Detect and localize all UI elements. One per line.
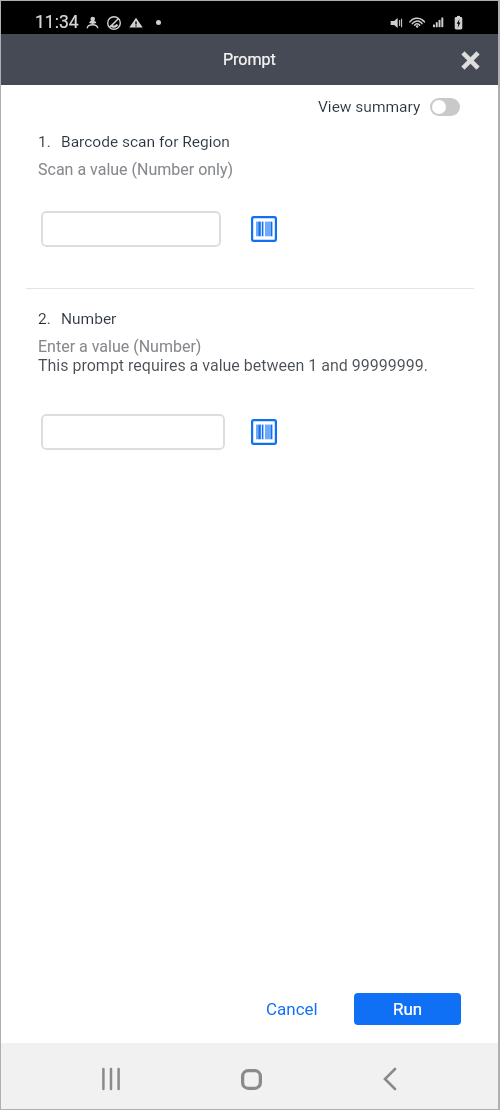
staticText: 2. bbox=[38, 310, 51, 328]
staticText: Barcode scan for Region bbox=[61, 133, 230, 151]
button[interactable]: Cancel bbox=[249, 989, 335, 1029]
button[interactable]: Home bbox=[221, 1049, 281, 1109]
button[interactable]: Scan barcode bbox=[251, 419, 277, 445]
staticText: 1. bbox=[38, 133, 51, 151]
button[interactable]: Run bbox=[354, 993, 461, 1025]
staticText: Prompt bbox=[223, 50, 276, 69]
staticText: Scan a value (Number only) bbox=[38, 160, 234, 179]
button[interactable]: Recent apps bbox=[81, 1049, 141, 1109]
staticText: View summary bbox=[318, 98, 421, 116]
button[interactable]: View summary bbox=[312, 94, 474, 120]
staticText: Enter a value (Number) bbox=[38, 337, 202, 356]
staticText: 11:34 bbox=[35, 12, 79, 33]
button[interactable]: Back bbox=[360, 1049, 420, 1109]
button[interactable]: Close bbox=[450, 40, 490, 80]
staticText: Number bbox=[61, 310, 117, 328]
button[interactable] bbox=[41, 414, 225, 450]
staticText: This prompt requires a value between 1 a… bbox=[38, 356, 428, 375]
button[interactable] bbox=[41, 211, 221, 247]
staticText: Run bbox=[393, 999, 423, 1019]
staticText: Cancel bbox=[266, 999, 318, 1019]
button[interactable]: Scan barcode bbox=[251, 216, 277, 242]
